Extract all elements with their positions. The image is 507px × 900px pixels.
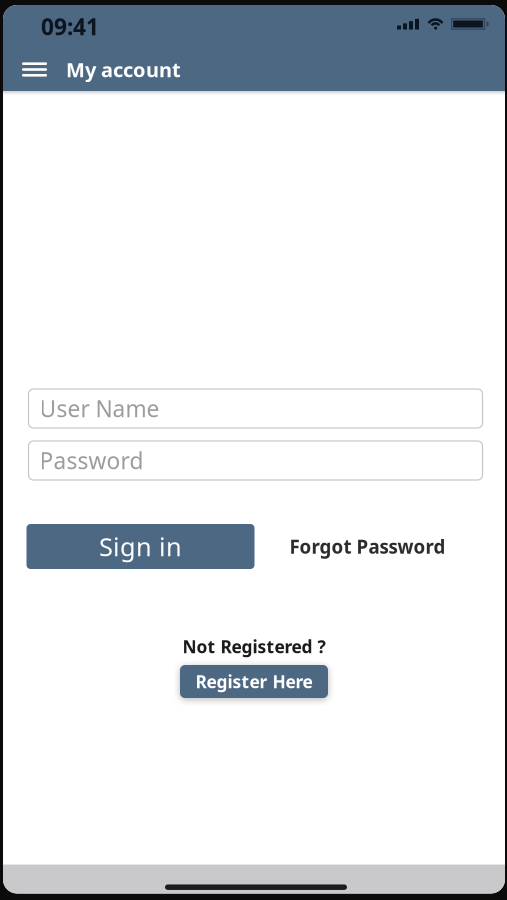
button[interactable]: Menu xyxy=(3,48,57,91)
staticText: Register Here xyxy=(195,670,312,693)
button[interactable]: Sign in xyxy=(26,524,254,569)
staticText: My account xyxy=(66,56,181,83)
staticText: Sign in xyxy=(99,530,182,563)
button[interactable]: Register Here xyxy=(180,665,328,698)
button[interactable]: User Name xyxy=(28,389,482,428)
button[interactable]: Forgot Password xyxy=(254,524,480,569)
staticText: 09:41 xyxy=(41,11,99,41)
staticText: User Name xyxy=(39,393,159,423)
button[interactable]: Password xyxy=(28,441,482,480)
staticText: Not Registered ? xyxy=(182,635,325,658)
staticText: Forgot Password xyxy=(289,534,445,559)
staticText: Password xyxy=(39,445,143,475)
